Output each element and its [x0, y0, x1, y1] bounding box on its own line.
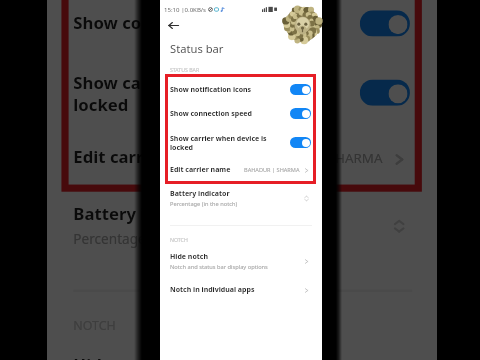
staticText: Show carrier when device is locked — [170, 134, 267, 152]
staticText: BAHADUR | SHARMA — [244, 166, 300, 174]
button[interactable]: Hide notch — [160, 249, 322, 274]
staticText: Edit carrier name — [170, 165, 231, 175]
button[interactable]: Notch in individual apps — [160, 279, 322, 301]
staticText: Status bar — [170, 41, 224, 56]
staticText: Battery indicator — [170, 189, 230, 199]
button[interactable]: Edit carrier name — [49, 132, 436, 184]
staticText: NOTCH — [170, 236, 188, 243]
staticText: Notch and status bar display options — [170, 263, 268, 271]
staticText: Percentage (in the notch) — [73, 230, 236, 249]
staticText: NOTCH — [73, 316, 116, 332]
button[interactable]: Show connection speed — [49, 0, 436, 51]
button[interactable]: Battery indicator — [49, 196, 436, 256]
button[interactable]: Show carrier when device is locked — [49, 60, 436, 125]
staticText: Hide notch — [170, 252, 208, 262]
staticText: Show connection speed — [170, 109, 252, 119]
staticText: Show notification icons — [170, 85, 252, 95]
button[interactable]: Show carrier when device is locked — [160, 129, 322, 156]
staticText: Notch in individual apps — [170, 285, 255, 295]
button[interactable]: Show connection speed — [160, 102, 322, 125]
button[interactable]: Edit carrier name — [160, 159, 322, 181]
button[interactable]: Hide notch — [49, 347, 436, 360]
staticText: BAHADUR | SHARMA — [250, 149, 384, 168]
staticText: Show connection speed — [73, 13, 269, 37]
button[interactable]: Show notification icons — [160, 78, 322, 101]
staticText: Edit carrier name — [73, 146, 219, 170]
staticText: Battery indicator — [73, 204, 217, 227]
staticText: STATUS BAR — [170, 66, 200, 73]
button[interactable]: Battery indicator — [160, 186, 322, 211]
staticText: Hide notch — [73, 354, 164, 360]
button[interactable]: Back — [165, 17, 182, 34]
staticText: Show carrier when device is locked — [73, 72, 305, 115]
staticText: Percentage (in the notch) — [170, 200, 238, 208]
staticText: 15:10 |0.0KB/s — [164, 5, 207, 13]
